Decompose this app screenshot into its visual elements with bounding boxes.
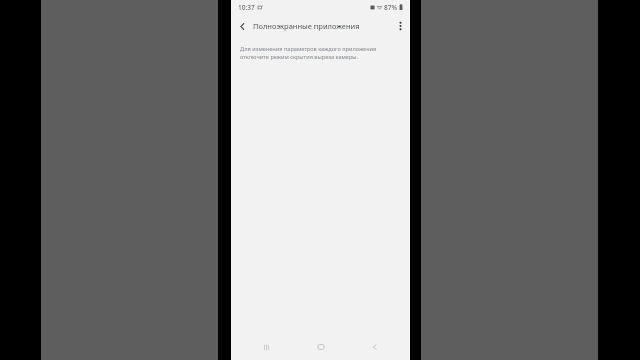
staticText: 87% bbox=[384, 3, 397, 12]
button[interactable]: More options bbox=[390, 14, 410, 38]
staticText: 10:37 bbox=[238, 3, 255, 12]
staticText: Для изменения параметров каждого приложе… bbox=[240, 45, 397, 61]
staticText: Полноэкранные приложения bbox=[253, 21, 360, 31]
button[interactable]: Back bbox=[231, 14, 253, 38]
button[interactable]: Recent apps bbox=[246, 334, 286, 360]
button[interactable]: Home bbox=[301, 334, 341, 360]
